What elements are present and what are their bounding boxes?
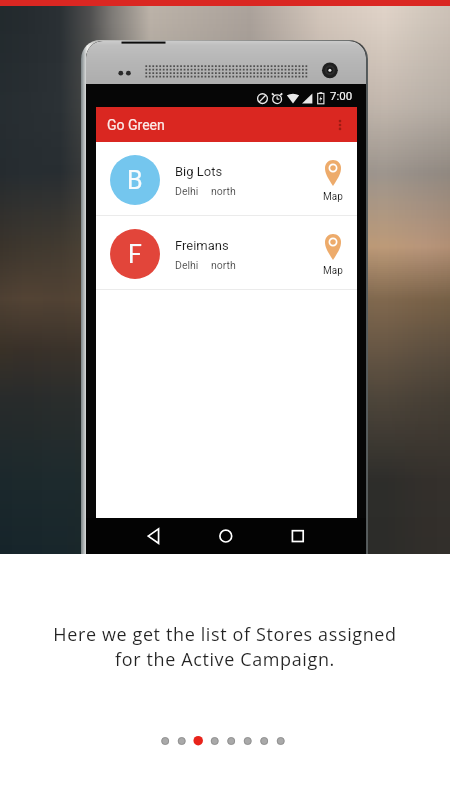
button[interactable]: Page 4 (209, 732, 226, 750)
staticText: north (211, 185, 236, 197)
button[interactable]: Map (323, 234, 343, 277)
staticText: Big Lots (175, 164, 223, 179)
button[interactable]: Map (323, 160, 343, 203)
staticText: Map (323, 265, 343, 277)
staticText: Delhi (175, 259, 199, 271)
staticText: 7:00 (330, 89, 353, 102)
button[interactable]: Page 1 (158, 732, 175, 750)
staticText: north (211, 259, 236, 271)
button[interactable]: B (96, 142, 357, 215)
staticText: Freimans (175, 238, 229, 253)
staticText: Go Green (107, 117, 165, 133)
button[interactable]: Page 7 (260, 732, 277, 750)
staticText: B (127, 166, 143, 195)
staticText: Delhi (175, 185, 199, 197)
button[interactable]: Page 2 (175, 732, 192, 750)
button[interactable]: Page 8 (277, 732, 294, 750)
button[interactable]: F (96, 216, 357, 289)
button[interactable]: Page 3 (192, 732, 209, 750)
staticText: Map (323, 191, 343, 203)
button[interactable]: More options (323, 108, 357, 142)
button[interactable]: Page 6 (243, 732, 260, 750)
button[interactable]: Page 5 (226, 732, 243, 750)
staticText: Here we get the list of Stores assigned … (25, 622, 425, 672)
staticText: F (128, 240, 142, 269)
